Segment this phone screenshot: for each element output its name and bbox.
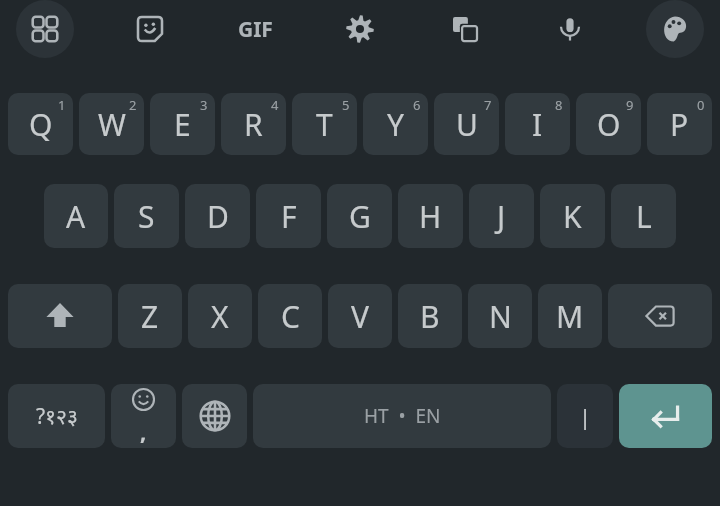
- button[interactable]: U: [434, 93, 499, 155]
- button[interactable]: T: [292, 93, 357, 155]
- button[interactable]: A: [44, 184, 108, 248]
- staticText: H: [419, 196, 442, 237]
- staticText: B: [420, 296, 440, 337]
- button[interactable]: F: [256, 184, 321, 248]
- button[interactable]: Y: [363, 93, 428, 155]
- staticText: 1: [58, 96, 66, 114]
- staticText: D: [207, 196, 229, 237]
- staticText: |: [579, 401, 592, 431]
- staticText: ,: [140, 416, 147, 446]
- staticText: Y: [387, 104, 404, 145]
- button[interactable]: GIF: [226, 0, 284, 58]
- staticText: N: [489, 296, 512, 337]
- staticText: S: [138, 196, 155, 237]
- staticText: A: [66, 196, 86, 237]
- staticText: F: [281, 196, 297, 237]
- button[interactable]: Emoji and comma: [111, 384, 176, 448]
- button[interactable]: H: [398, 184, 463, 248]
- staticText: G: [349, 196, 371, 237]
- button[interactable]: ?१२३: [8, 384, 105, 448]
- staticText: 9: [626, 96, 634, 114]
- button[interactable]: Q: [8, 93, 73, 155]
- staticText: U: [456, 104, 478, 145]
- staticText: GIF: [238, 15, 273, 44]
- staticText: P: [670, 104, 689, 145]
- button[interactable]: Voice input: [541, 0, 599, 58]
- staticText: C: [281, 296, 300, 337]
- staticText: I: [532, 104, 543, 145]
- staticText: O: [597, 104, 621, 145]
- staticText: Q: [29, 104, 53, 145]
- staticText: T: [316, 104, 333, 145]
- staticText: 2: [129, 96, 137, 114]
- staticText: E: [174, 104, 191, 145]
- button[interactable]: Change language: [182, 384, 247, 448]
- button[interactable]: J: [469, 184, 534, 248]
- button[interactable]: Apps: [16, 0, 74, 58]
- staticText: W: [98, 104, 126, 145]
- staticText: ?१२३: [36, 402, 78, 431]
- staticText: 8: [555, 96, 563, 114]
- button[interactable]: E: [150, 93, 215, 155]
- button[interactable]: Settings: [331, 0, 389, 58]
- button[interactable]: Theme: [646, 0, 704, 58]
- button[interactable]: G: [327, 184, 392, 248]
- button[interactable]: C: [258, 284, 322, 348]
- button[interactable]: S: [114, 184, 179, 248]
- button[interactable]: R: [221, 93, 286, 155]
- button[interactable]: Backspace: [608, 284, 712, 348]
- button[interactable]: Space: [253, 384, 551, 448]
- button[interactable]: O: [576, 93, 641, 155]
- button[interactable]: Enter: [619, 384, 712, 448]
- button[interactable]: D: [185, 184, 250, 248]
- staticText: HT • EN: [364, 403, 441, 429]
- button[interactable]: K: [540, 184, 605, 248]
- staticText: 3: [200, 96, 208, 114]
- button[interactable]: M: [538, 284, 602, 348]
- staticText: 5: [342, 96, 350, 114]
- staticText: V: [351, 296, 369, 337]
- button[interactable]: P: [647, 93, 712, 155]
- staticText: J: [497, 196, 506, 237]
- staticText: R: [244, 104, 263, 145]
- staticText: K: [563, 196, 582, 237]
- button[interactable]: Shift: [8, 284, 112, 348]
- button[interactable]: N: [468, 284, 532, 348]
- button[interactable]: I: [505, 93, 570, 155]
- staticText: L: [636, 196, 652, 237]
- button[interactable]: Translate: [436, 0, 494, 58]
- staticText: 4: [271, 96, 279, 114]
- button[interactable]: X: [188, 284, 252, 348]
- staticText: Z: [141, 296, 159, 337]
- button[interactable]: L: [611, 184, 676, 248]
- staticText: 6: [413, 96, 421, 114]
- staticText: X: [211, 296, 229, 337]
- button[interactable]: B: [398, 284, 462, 348]
- button[interactable]: Period: [557, 384, 613, 448]
- button[interactable]: Z: [118, 284, 182, 348]
- button[interactable]: W: [79, 93, 144, 155]
- staticText: M: [556, 296, 584, 337]
- button[interactable]: V: [328, 284, 392, 348]
- staticText: 0: [697, 96, 705, 114]
- staticText: 7: [484, 96, 492, 114]
- button[interactable]: Stickers: [121, 0, 179, 58]
